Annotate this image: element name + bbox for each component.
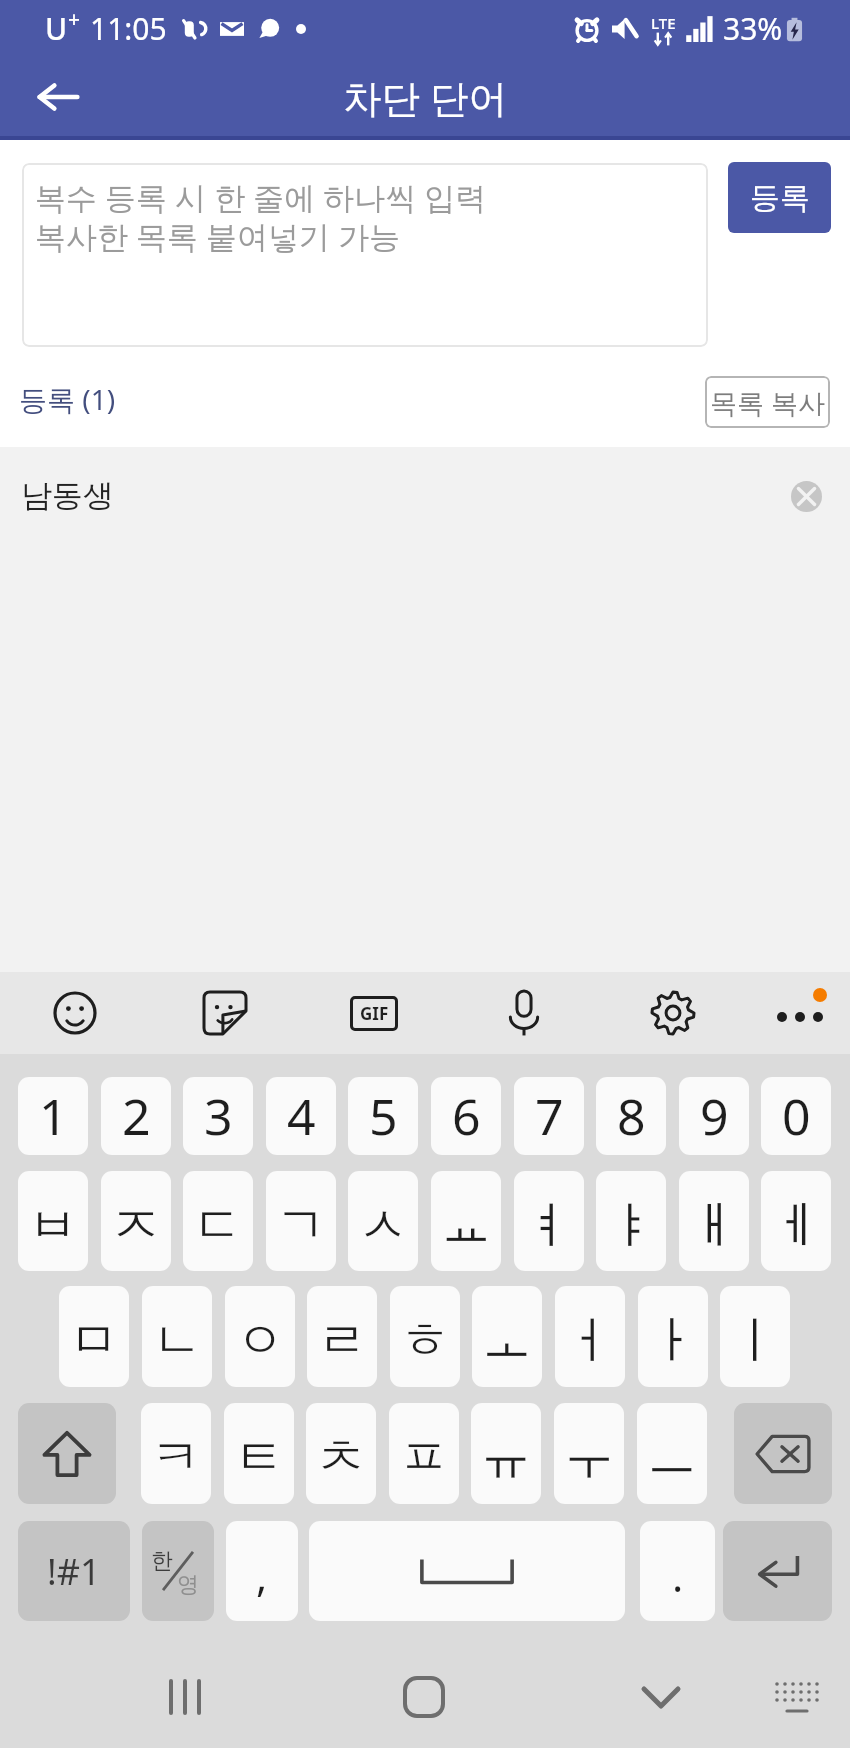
- staticText: 5: [369, 1082, 398, 1150]
- button[interactable]: ㅡ: [637, 1403, 707, 1504]
- button[interactable]: ㄱ: [266, 1171, 336, 1271]
- button[interactable]: ㅕ: [514, 1171, 584, 1271]
- staticText: ㅡ: [647, 1426, 697, 1489]
- button[interactable]: 4: [266, 1077, 336, 1155]
- staticText: 0: [782, 1082, 811, 1150]
- button[interactable]: ㅎ: [390, 1286, 460, 1387]
- staticText: ㅠ: [481, 1426, 531, 1489]
- button[interactable]: ㅌ: [224, 1403, 294, 1504]
- staticText: LTE: [651, 13, 676, 33]
- staticText: 등록 (1): [19, 380, 116, 418]
- staticText: 한: [151, 1547, 173, 1575]
- staticText: ㅎ: [400, 1309, 450, 1372]
- staticText: ㅑ: [606, 1194, 656, 1257]
- staticText: 2: [122, 1082, 151, 1150]
- button[interactable]: 남동생: [0, 447, 850, 544]
- button[interactable]: Enter: [723, 1521, 832, 1621]
- staticText: 남동생: [21, 476, 114, 515]
- staticText: ㅇ: [235, 1309, 285, 1372]
- button[interactable]: ㅜ: [554, 1403, 624, 1504]
- button[interactable]: ㅈ: [101, 1171, 171, 1271]
- button[interactable]: Korean English toggle: [142, 1521, 214, 1621]
- staticText: ㄱ: [276, 1194, 326, 1257]
- button[interactable]: !#1: [18, 1521, 130, 1621]
- button[interactable]: ㅠ: [471, 1403, 541, 1504]
- button[interactable]: ㅁ: [59, 1286, 129, 1387]
- button[interactable]: ㅂ: [18, 1171, 88, 1271]
- button[interactable]: Stickers: [195, 983, 255, 1043]
- staticText: 6: [452, 1082, 481, 1150]
- button[interactable]: ㅇ: [225, 1286, 295, 1387]
- button[interactable]: Home: [386, 1659, 462, 1735]
- button[interactable]: ㅅ: [348, 1171, 418, 1271]
- button[interactable]: 목록 복사: [705, 376, 830, 428]
- button[interactable]: ㅗ: [472, 1286, 542, 1387]
- staticText: ㅕ: [524, 1194, 574, 1257]
- staticText: 7: [535, 1082, 564, 1150]
- button[interactable]: 1: [18, 1077, 88, 1155]
- button[interactable]: ,: [226, 1521, 298, 1621]
- staticText: U: [45, 8, 68, 49]
- button[interactable]: Emoji: [45, 983, 105, 1043]
- button[interactable]: ㅛ: [431, 1171, 501, 1271]
- staticText: 33%: [723, 8, 783, 49]
- button[interactable]: ㅋ: [141, 1403, 211, 1504]
- staticText: ㅂ: [28, 1194, 78, 1257]
- staticText: 3: [204, 1082, 233, 1150]
- button[interactable]: More options: [770, 983, 830, 1043]
- staticText: 1: [39, 1082, 68, 1150]
- staticText: .: [672, 1547, 684, 1604]
- button[interactable]: 2: [101, 1077, 171, 1155]
- button[interactable]: 9: [679, 1077, 749, 1155]
- button[interactable]: ㄷ: [183, 1171, 253, 1271]
- button[interactable]: .: [640, 1521, 715, 1621]
- button[interactable]: 7: [514, 1077, 584, 1155]
- button[interactable]: Delete: [782, 472, 830, 520]
- staticText: ㄷ: [193, 1194, 243, 1257]
- staticText: +: [68, 5, 81, 34]
- button[interactable]: 등록: [728, 162, 831, 233]
- staticText: ㅊ: [316, 1426, 366, 1489]
- button[interactable]: 6: [431, 1077, 501, 1155]
- button[interactable]: ㅔ: [761, 1171, 831, 1271]
- button[interactable]: ㅐ: [679, 1171, 749, 1271]
- staticText: 9: [700, 1082, 729, 1150]
- button[interactable]: 3: [183, 1077, 253, 1155]
- staticText: !#1: [47, 1547, 101, 1596]
- button[interactable]: 등록 (1): [19, 380, 116, 418]
- staticText: ㅗ: [482, 1309, 532, 1372]
- button[interactable]: Voice input: [494, 983, 554, 1043]
- button[interactable]: 8: [596, 1077, 666, 1155]
- button[interactable]: GIF: [344, 983, 404, 1043]
- staticText: ㅣ: [730, 1309, 780, 1372]
- staticText: ㄴ: [152, 1309, 202, 1372]
- button[interactable]: ㄹ: [307, 1286, 377, 1387]
- button[interactable]: Keyboard layout: [759, 1659, 835, 1735]
- button[interactable]: ㄴ: [142, 1286, 212, 1387]
- button[interactable]: ㅓ: [555, 1286, 625, 1387]
- staticText: 4: [287, 1082, 316, 1150]
- button[interactable]: 0: [761, 1077, 831, 1155]
- button[interactable]: Backspace: [734, 1403, 832, 1504]
- button[interactable]: Space: [309, 1521, 625, 1621]
- button[interactable]: Settings: [643, 983, 703, 1043]
- staticText: ,: [256, 1547, 268, 1604]
- button[interactable]: ㅊ: [306, 1403, 376, 1504]
- button[interactable]: ㅣ: [720, 1286, 790, 1387]
- staticText: ㅔ: [771, 1194, 821, 1257]
- button[interactable]: ㅑ: [596, 1171, 666, 1271]
- button[interactable]: Hide keyboard: [623, 1659, 699, 1735]
- staticText: ㅓ: [565, 1309, 615, 1372]
- button[interactable]: Shift: [18, 1403, 116, 1504]
- button[interactable]: 5: [348, 1077, 418, 1155]
- staticText: ㅍ: [399, 1426, 449, 1489]
- staticText: ㄹ: [317, 1309, 367, 1372]
- button[interactable]: 복수 등록 시 한 줄에 하나씩 입력 복사한 목록 붙여넣기 가능: [22, 163, 708, 347]
- button[interactable]: ㅏ: [638, 1286, 708, 1387]
- button[interactable]: Back: [26, 65, 90, 129]
- staticText: ㅌ: [234, 1426, 284, 1489]
- button[interactable]: ㅍ: [389, 1403, 459, 1504]
- button[interactable]: Recent apps: [147, 1659, 223, 1735]
- staticText: 복수 등록 시 한 줄에 하나씩 입력 복사한 목록 붙여넣기 가능: [35, 176, 487, 258]
- staticText: 목록 복사: [710, 384, 826, 421]
